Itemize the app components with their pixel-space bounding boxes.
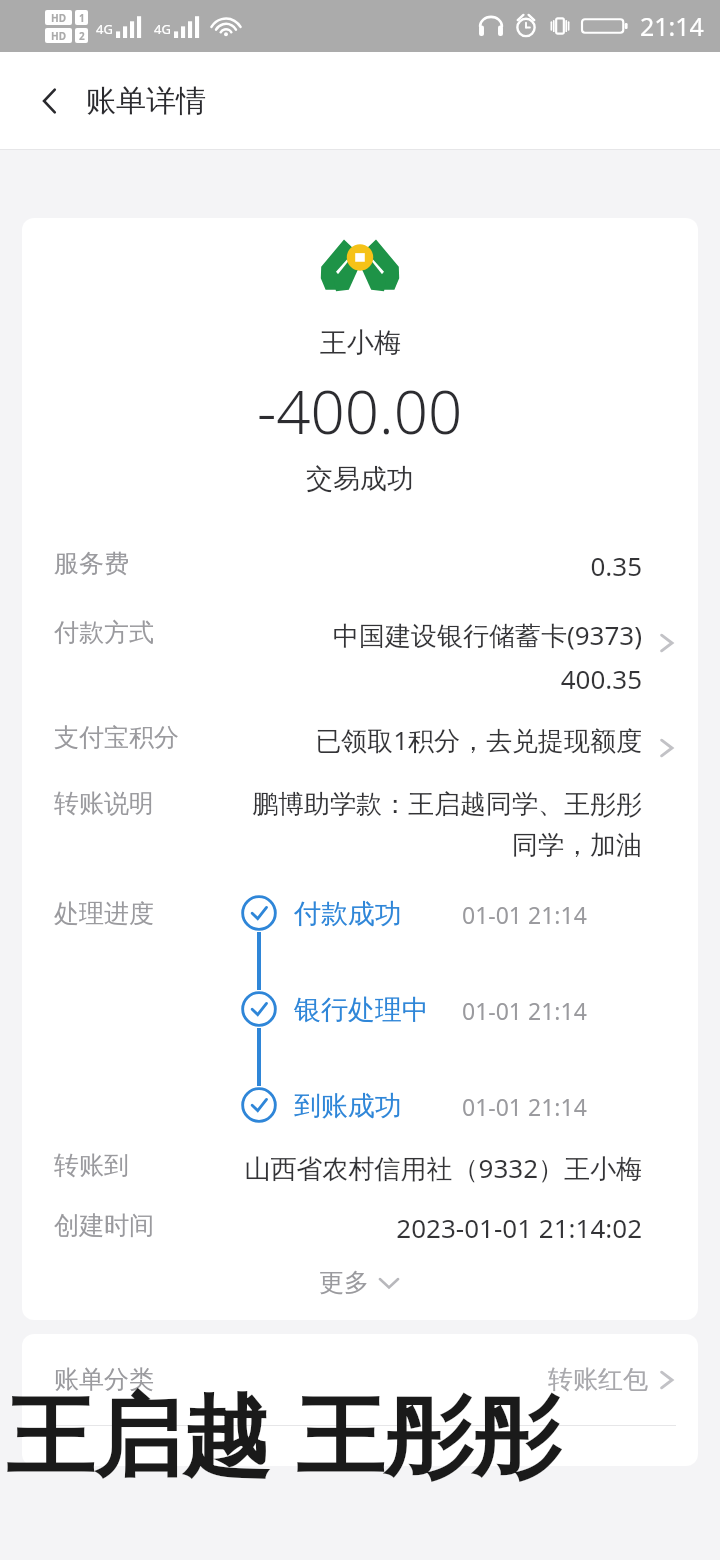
staticText: 山西省农村信用社（9332）王小梅 bbox=[244, 1150, 642, 1186]
staticText: 4G bbox=[96, 20, 113, 38]
staticText: 王启越 bbox=[6, 1382, 270, 1493]
staticText: 同学，加油 bbox=[512, 829, 642, 862]
staticText: 01-01 21:14 bbox=[462, 995, 587, 1026]
staticText: 服务费 bbox=[54, 548, 194, 579]
button[interactable]: 付款方式 bbox=[22, 617, 698, 696]
staticText: 转账红包 bbox=[548, 1364, 648, 1395]
staticText: HD bbox=[51, 11, 66, 25]
staticText: 付款方式 bbox=[54, 617, 194, 648]
button[interactable]: 转账说明 bbox=[22, 788, 698, 862]
staticText: 账单分类 bbox=[54, 1364, 154, 1395]
staticText: 2 bbox=[79, 29, 85, 43]
button[interactable]: 服务费 bbox=[22, 548, 698, 583]
staticText: 付款成功 bbox=[294, 897, 402, 931]
staticText: 更多 bbox=[319, 1267, 369, 1298]
staticText: 转账到 bbox=[54, 1150, 194, 1181]
staticText: 鹏博助学款：王启越同学、王彤彤 bbox=[252, 788, 642, 821]
staticText: 01-01 21:14 bbox=[462, 899, 587, 930]
staticText: 中国建设银行储蓄卡(9373) bbox=[332, 617, 642, 653]
staticText: 银行处理中 bbox=[294, 993, 429, 1027]
staticText: 1 bbox=[79, 11, 85, 25]
staticText: 0.35 bbox=[590, 548, 642, 583]
staticText: 到账成功 bbox=[294, 1089, 402, 1123]
staticText: 已领取1积分，去兑提现额度 bbox=[315, 722, 642, 758]
staticText: 王彤彤 bbox=[296, 1382, 560, 1493]
staticText: 21:14 bbox=[640, 9, 704, 43]
staticText: 400.35 bbox=[560, 661, 642, 696]
staticText: HD bbox=[51, 29, 66, 43]
staticText: 支付宝积分 bbox=[54, 722, 194, 753]
staticText: -400.00 bbox=[257, 370, 463, 452]
staticText: 转账说明 bbox=[54, 788, 194, 819]
staticText: 交易成功 bbox=[306, 462, 414, 496]
button[interactable]: Back bbox=[22, 73, 78, 129]
staticText: 创建时间 bbox=[54, 1210, 194, 1241]
button[interactable]: 创建时间 bbox=[22, 1210, 698, 1245]
staticText: 账单详情 bbox=[86, 82, 206, 120]
staticText: 01-01 21:14 bbox=[462, 1091, 587, 1122]
button[interactable]: 账单分类 bbox=[22, 1334, 698, 1425]
button[interactable]: 支付宝积分 bbox=[22, 722, 698, 762]
staticText: 处理进度 bbox=[54, 898, 194, 929]
staticText: 王小梅 bbox=[320, 326, 401, 360]
staticText: 4G bbox=[154, 20, 171, 38]
button[interactable]: 更多 bbox=[22, 1267, 698, 1298]
button[interactable]: 转账到 bbox=[22, 1150, 698, 1186]
staticText: 2023-01-01 21:14:02 bbox=[396, 1210, 642, 1245]
